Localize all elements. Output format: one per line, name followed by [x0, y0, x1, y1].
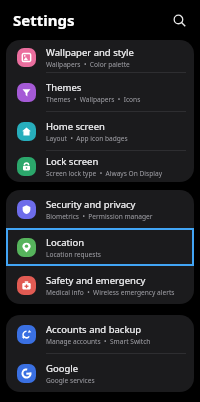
- button[interactable]: Location: [6, 228, 194, 266]
- button[interactable]: Google: [6, 354, 194, 392]
- staticText: Settings: [13, 10, 75, 30]
- staticText: Location requests: [46, 250, 102, 259]
- staticText: Wallpaper and style: [46, 46, 134, 59]
- button[interactable]: Security and privacy: [6, 190, 194, 228]
- staticText: Wallpapers • Color palette: [46, 60, 130, 69]
- staticText: Manage accounts • Smart Switch: [46, 337, 151, 346]
- button[interactable]: Wallpaper and style: [6, 40, 194, 72]
- staticText: Safety and emergency: [46, 274, 146, 287]
- staticText: Home screen: [46, 120, 105, 133]
- button[interactable]: Search: [166, 7, 192, 33]
- staticText: Google services: [46, 376, 95, 385]
- staticText: Accounts and backup: [46, 323, 142, 336]
- button[interactable]: Accounts and backup: [6, 315, 194, 353]
- staticText: Google: [46, 362, 79, 375]
- button[interactable]: Home screen: [6, 112, 194, 150]
- staticText: Biometrics • Permission manager: [46, 212, 153, 221]
- staticText: Lock screen: [46, 155, 99, 168]
- staticText: Themes: [46, 81, 82, 94]
- button[interactable]: Themes: [6, 73, 194, 111]
- staticText: Layout • App icon badges: [46, 134, 128, 143]
- staticText: Security and privacy: [46, 198, 136, 211]
- staticText: Themes • Wallpapers • Icons: [46, 95, 141, 104]
- button[interactable]: Lock screen: [6, 151, 194, 182]
- button[interactable]: Safety and emergency: [6, 266, 194, 304]
- staticText: Medical info • Wireless emergency alerts: [46, 288, 175, 297]
- staticText: Location: [46, 236, 85, 249]
- staticText: Screen lock type • Always On Display: [46, 169, 163, 178]
